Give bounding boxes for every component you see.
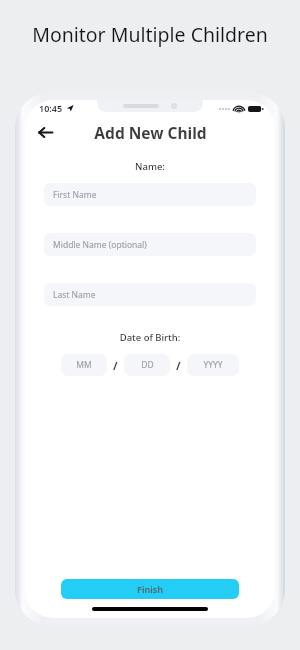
staticText: Middle Name (optional): [53, 239, 147, 251]
staticText: Name:: [44, 160, 256, 173]
staticText: Add New Child: [94, 122, 207, 143]
staticText: /: [176, 358, 181, 373]
button[interactable]: First Name: [44, 183, 256, 206]
staticText: Date of Birth:: [44, 331, 256, 344]
button[interactable]: Back: [31, 118, 59, 146]
staticText: Last Name: [53, 289, 96, 301]
button[interactable]: DD: [124, 354, 170, 376]
button[interactable]: Finish: [61, 579, 239, 599]
staticText: DD: [141, 359, 154, 371]
button[interactable]: Last Name: [44, 283, 256, 306]
staticText: 10:45: [39, 102, 63, 114]
button[interactable]: Middle Name (optional): [44, 233, 256, 256]
staticText: MM: [76, 359, 92, 371]
staticText: /: [113, 358, 118, 373]
staticText: Finish: [137, 583, 163, 595]
button[interactable]: MM: [61, 354, 107, 376]
staticText: First Name: [53, 189, 97, 201]
staticText: YYYY: [203, 359, 223, 371]
button[interactable]: YYYY: [187, 354, 239, 376]
staticText: Monitor Multiple Children: [0, 21, 300, 48]
